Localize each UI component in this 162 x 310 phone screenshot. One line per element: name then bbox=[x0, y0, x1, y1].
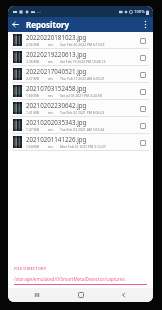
staticText: ms bbox=[48, 76, 53, 81]
button[interactable]: Select 20220219220613.jpg bbox=[137, 52, 148, 63]
button[interactable]: Select 20210202230642.jpg bbox=[137, 103, 148, 114]
staticText: 2.36 MB bbox=[26, 59, 39, 64]
staticText: ms bbox=[48, 42, 53, 47]
staticText: 1.41 MB bbox=[26, 110, 39, 115]
staticText: 20210202230642.jpg bbox=[26, 101, 87, 109]
button[interactable]: 20220219220613.jpg bbox=[8, 49, 153, 65]
button[interactable]: 20210202230642.jpg bbox=[8, 100, 153, 116]
staticText: 3.37 MB bbox=[26, 76, 39, 81]
button[interactable]: Select 20220220181023.jpg bbox=[137, 35, 148, 46]
staticText: 20220219220613.jpg bbox=[26, 50, 87, 58]
staticText: 20210201141226.jpg bbox=[26, 135, 87, 143]
staticText: 20210202035343.jpg bbox=[26, 118, 87, 126]
staticText: 2.36 MB bbox=[26, 42, 39, 47]
staticText: ms bbox=[48, 59, 53, 64]
staticText: 20220217040521.jpg bbox=[26, 67, 87, 75]
button[interactable]: More options bbox=[138, 17, 153, 32]
staticText: Tue Feb 02 2021 AM 3:53:44 bbox=[60, 127, 105, 132]
button[interactable]: Select 20210202035343.jpg bbox=[137, 120, 148, 131]
staticText: Sat Feb 19 2022 PM 10:06:13 bbox=[60, 59, 106, 64]
button[interactable]: Back bbox=[8, 17, 23, 32]
staticText: Thu Feb 17 2022 AM 4:05:21 bbox=[60, 76, 105, 81]
staticText: ms bbox=[48, 144, 53, 149]
staticText: Mon Feb 01 2021 PM 2:12:27 bbox=[60, 144, 106, 149]
staticText: 20210703152458.jpg bbox=[26, 84, 87, 92]
staticText: ms bbox=[48, 93, 53, 98]
button[interactable]: 20210202035343.jpg bbox=[8, 117, 153, 133]
staticText: Tue Feb 02 2021 PM 8:06:23 bbox=[60, 110, 105, 115]
button[interactable]: Select 20210703152458.jpg bbox=[137, 86, 148, 97]
button[interactable]: Select 20210201141226.jpg bbox=[137, 137, 148, 148]
staticText: FILE DIRECTORY bbox=[14, 266, 47, 272]
button[interactable]: 20220220181023.jpg bbox=[8, 32, 153, 48]
staticText: 1.54 MB bbox=[26, 144, 39, 149]
button[interactable]: 20210703152458.jpg bbox=[8, 83, 153, 99]
staticText: 1.47 MB bbox=[26, 127, 39, 132]
button[interactable]: Select 20220217040521.jpg bbox=[137, 69, 148, 80]
staticText: Repository bbox=[26, 19, 70, 30]
staticText: Sun Feb 20 2022 PM 6:10:23 bbox=[60, 42, 105, 47]
button[interactable]: 20210201141226.jpg bbox=[8, 134, 153, 150]
staticText: /storage/emulated/0/SmartMetalDetector/c… bbox=[14, 276, 125, 282]
staticText: Sat Jul 03 2021 PM 4:24:58 bbox=[60, 93, 102, 98]
button[interactable]: 20220217040521.jpg bbox=[8, 66, 153, 82]
staticText: 1.80 MB bbox=[26, 93, 39, 98]
button[interactable]: Recent apps bbox=[22, 288, 52, 302]
button[interactable]: FILE DIRECTORY bbox=[8, 264, 153, 288]
staticText: ms bbox=[48, 127, 53, 132]
button[interactable]: Back bbox=[109, 288, 139, 302]
staticText: 100% bbox=[134, 9, 145, 15]
staticText: 20220220181023.jpg bbox=[26, 33, 87, 41]
button[interactable]: Home bbox=[66, 288, 96, 302]
staticText: ms bbox=[48, 110, 53, 115]
